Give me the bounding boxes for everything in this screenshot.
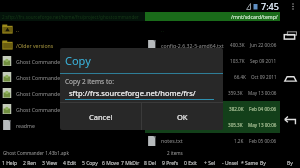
button[interactable]: 9 Prefs — [160, 158, 180, 168]
button[interactable]: 2 Ren — [20, 158, 40, 168]
staticText: OK — [177, 112, 188, 122]
button[interactable]: debian-live.iso — [145, 53, 280, 69]
button[interactable]: 5 Copy — [80, 158, 100, 168]
staticText: + Sel — [204, 160, 216, 167]
staticText: 394.1K — [95, 90, 110, 96]
staticText: sftp://frs.sourceforge.net/home/frs/ — [69, 88, 196, 98]
staticText: 8 Del — [144, 160, 156, 167]
staticText: 2 Ren — [23, 160, 37, 167]
button[interactable]: Home — [280, 68, 300, 88]
staticText: 382.0K — [229, 106, 244, 112]
button[interactable]: * Same — [240, 158, 260, 168]
staticText: /Older versions — [16, 42, 142, 49]
staticText: Copy — [65, 53, 91, 68]
button[interactable]: Ghost Commander 1.43b1.apk — [0, 53, 145, 69]
staticText: 1.2K — [234, 138, 244, 144]
button[interactable]: Ghost Commander 1.41.apk — [0, 85, 145, 101]
staticText: Ghost Commander 1.42.apk — [16, 74, 95, 81]
staticText: 359.3K — [228, 90, 243, 96]
staticText: Sep 09 2011 — [250, 58, 277, 64]
staticText: nginx_v1.20.apk — [161, 122, 228, 129]
button[interactable]: gcvs-1.10.apk — [145, 85, 280, 101]
staticText: 6 Move — [102, 160, 119, 167]
button[interactable]: More options — [288, 1, 297, 12]
button[interactable]: Back — [280, 110, 300, 130]
staticText: Ghost Commander 1.43b1.apk — [16, 58, 94, 65]
button[interactable]: 1 Help — [0, 158, 20, 168]
staticText: Ghost Commander 1.41.apk — [16, 90, 95, 97]
button[interactable]: - Unsel — [220, 158, 240, 168]
staticText: 0 Exit — [184, 160, 197, 167]
button[interactable]: Ghost Commander 1.40.apk — [0, 101, 145, 117]
button[interactable]: 0 Exit — [180, 158, 200, 168]
button[interactable]: ghost_v1.43.apk — [145, 101, 280, 117]
staticText: Nov 20 02:58 — [114, 122, 142, 128]
staticText: 3 View — [42, 160, 58, 167]
staticText: ghost_v1.43.apk — [161, 106, 229, 113]
button[interactable]: 4 Edit — [60, 158, 80, 168]
button[interactable]: Ghost Commander 1.42.apk — [0, 69, 145, 85]
staticText: 1 Help — [2, 160, 18, 167]
staticText: 9 Prefs — [162, 160, 179, 167]
button[interactable]: Cancel — [60, 103, 141, 130]
button[interactable]: + Sel — [200, 158, 220, 168]
staticText: 4 Edit — [63, 160, 77, 167]
staticText: config-2.6.32-5-amd64.txt — [161, 42, 230, 49]
staticText: 2:sftp://frs.sourceforge.net/home/frs/pr… — [2, 14, 139, 20]
staticText: dropbear.tar.gz — [161, 74, 234, 81]
button[interactable]: By — [280, 158, 300, 168]
staticText: Copy 2 items to: — [65, 77, 114, 86]
button[interactable]: 6 Move — [100, 158, 120, 168]
staticText: 103.7K — [230, 58, 245, 64]
staticText: 7 MkDir — [121, 160, 140, 167]
staticText: - Unsel — [222, 160, 239, 167]
button[interactable]: 7 MkDir — [120, 158, 140, 168]
staticText: Sep 26 00:13 — [114, 106, 142, 112]
staticText: * Same — [241, 160, 259, 167]
staticText: 7:45 — [261, 0, 279, 12]
staticText: By Name — [260, 160, 280, 167]
staticText: Ghost Commander 1.43b1.apk — [3, 150, 69, 156]
staticText: notes.txt — [161, 137, 234, 144]
button[interactable]: nginx_v1.20.apk — [145, 117, 280, 133]
button[interactable]: /Older versions — [0, 37, 145, 53]
staticText: Cancel — [89, 112, 113, 122]
staticText: /mnt/sdcard/temp/ — [231, 13, 278, 20]
staticText: Oct 09 23:51 — [115, 90, 142, 96]
staticText: Ghost Commander 1.40.apk — [16, 106, 94, 113]
button[interactable]: .. — [0, 21, 145, 37]
staticText: Feb 05 00:06 — [249, 138, 277, 144]
staticText: 66.4K — [234, 74, 246, 80]
staticText: By — [287, 160, 293, 167]
button[interactable]: Recent apps — [280, 26, 300, 46]
button[interactable]: OK — [142, 103, 223, 130]
button[interactable]: notes.txt — [145, 133, 280, 148]
staticText: May 13 00:06 — [248, 90, 277, 96]
staticText: gcvs-1.10.apk — [161, 90, 228, 97]
staticText: 2 items — [167, 150, 183, 156]
button[interactable]: /mnt/sdcard/temp/ — [145, 12, 280, 21]
button[interactable]: readme — [0, 117, 145, 133]
button[interactable]: dropbear.tar.gz — [145, 69, 280, 85]
staticText: Jun 22 00:06 — [250, 42, 277, 48]
button[interactable]: 2:sftp://frs.sourceforge.net/home/frs/pr… — [0, 12, 145, 21]
staticText: readme — [16, 122, 99, 129]
staticText: Feb 04 00:06 — [249, 106, 277, 112]
button[interactable]: config-2.6.32-5-amd64.txt — [145, 37, 280, 53]
staticText: 400.3K — [230, 42, 245, 48]
staticText: 5 Copy — [82, 160, 98, 167]
button[interactable]: 3 View — [40, 158, 60, 168]
staticText: debian-live.iso — [161, 58, 230, 65]
button[interactable]: 8 Del — [140, 158, 160, 168]
staticText: 396.0K — [95, 74, 110, 80]
staticText: 305.3K — [228, 122, 243, 128]
button[interactable]: By Name — [260, 158, 280, 168]
